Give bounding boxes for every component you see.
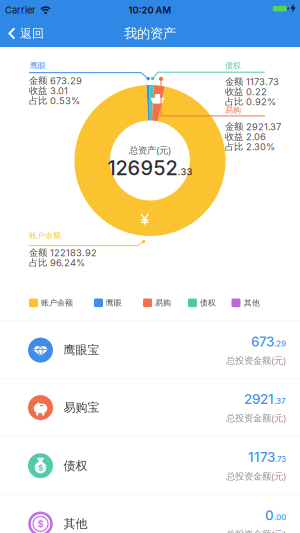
staticText: 占比 0.92% — [225, 96, 276, 107]
staticText: 收益 2.06 — [225, 131, 266, 142]
staticText: 占比 96.24% — [29, 257, 85, 268]
staticText: $ — [37, 518, 43, 529]
staticText: 鹰眼 — [30, 61, 46, 71]
button[interactable]: $ — [0, 437, 300, 494]
staticText: 总投资金额(元) — [226, 471, 286, 482]
staticText: 1173 — [248, 449, 275, 465]
staticText: 其他 — [244, 298, 260, 308]
staticText: 总投资金额(元) — [226, 412, 286, 424]
staticText: 鹰眼宝 — [63, 343, 99, 357]
button[interactable]: 易购宝 — [0, 379, 300, 436]
staticText: 总投资金额(元) — [226, 355, 286, 366]
staticText: 126952 — [107, 156, 177, 180]
staticText: 占比 2.30% — [225, 141, 275, 152]
staticText: 占比 0.53% — [29, 95, 80, 106]
staticText: 我的资产 — [124, 25, 176, 42]
staticText: 其他 — [63, 516, 87, 531]
staticText: 易购宝 — [63, 400, 99, 415]
staticText: 总资产(元) — [129, 145, 171, 156]
staticText: 金额 673.29 — [29, 75, 82, 86]
staticText: 易购 — [225, 105, 241, 115]
staticText: 金额 122183.92 — [29, 247, 97, 258]
button[interactable]: 返回 — [8, 20, 60, 47]
staticText: 鹰眼 — [106, 298, 122, 308]
staticText: 收益 3.01 — [29, 85, 68, 96]
staticText: 债权 — [225, 61, 241, 71]
staticText: .33 — [177, 166, 192, 177]
staticText: 金额 2921.37 — [225, 121, 281, 132]
staticText: 总投资金额(元) — [226, 529, 286, 533]
staticText: 2921 — [244, 391, 274, 407]
staticText: .73 — [275, 454, 286, 464]
staticText: 债权 — [63, 458, 87, 473]
staticText: 债权 — [200, 298, 216, 308]
staticText: 账户余额 — [41, 298, 73, 308]
staticText: .29 — [274, 339, 286, 348]
staticText: 0 — [265, 507, 274, 523]
staticText: 账户余额 — [29, 231, 61, 240]
staticText: 金额 1173.73 — [225, 76, 279, 87]
staticText: .37 — [274, 396, 286, 406]
staticText: 返回 — [20, 26, 44, 41]
staticText: Carrier — [5, 4, 36, 15]
staticText: 收益 0.22 — [225, 86, 267, 97]
button[interactable]: $ — [0, 495, 300, 533]
staticText: 易购 — [155, 298, 171, 308]
staticText: 10:20 AM — [128, 4, 171, 15]
staticText: 673 — [251, 334, 274, 349]
staticText: .00 — [274, 512, 286, 522]
button[interactable]: 鹰眼宝 — [0, 321, 300, 379]
staticText: $ — [38, 463, 43, 472]
